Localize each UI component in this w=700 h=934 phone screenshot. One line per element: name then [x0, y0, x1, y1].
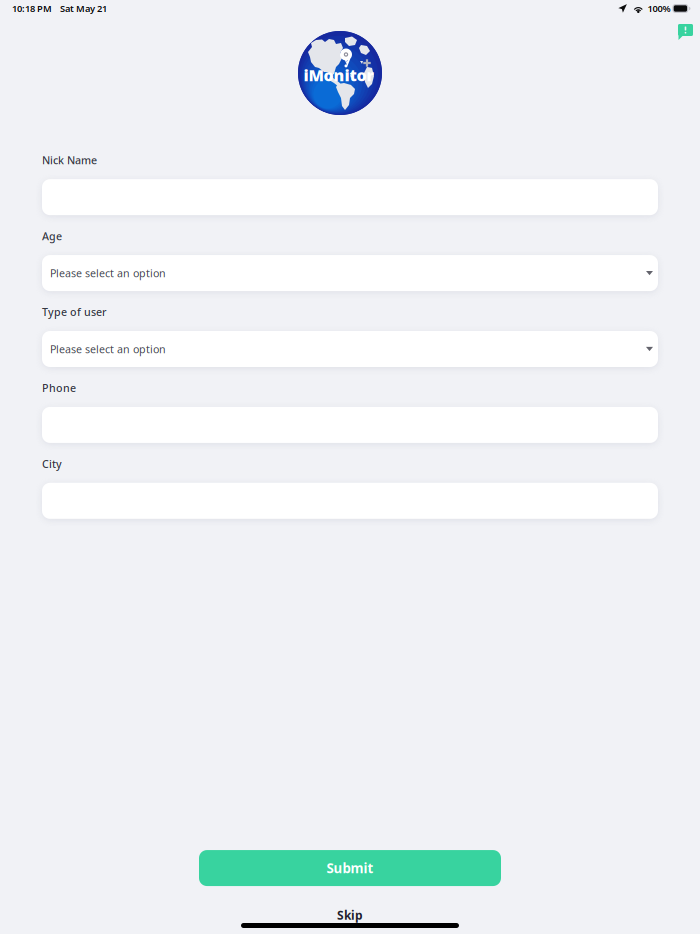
staticText: 10:18 PM: [12, 2, 52, 15]
button[interactable]: Help: [678, 24, 693, 41]
staticText: Nick Name: [42, 153, 97, 167]
staticText: Please select an option: [50, 266, 166, 280]
staticText: Phone: [42, 381, 76, 395]
staticText: Submit: [326, 859, 373, 877]
staticText: 100%: [647, 2, 670, 15]
staticText: City: [42, 457, 62, 471]
staticText: Age: [42, 229, 62, 243]
staticText: iMonitor: [303, 64, 374, 86]
staticText: Please select an option: [50, 342, 166, 356]
button[interactable]: Age: [42, 255, 658, 291]
button[interactable]: Skip: [337, 907, 363, 923]
staticText: Sat May 21: [60, 2, 107, 15]
button[interactable]: Type of user: [42, 331, 658, 367]
staticText: Skip: [337, 907, 363, 923]
button[interactable]: Submit: [199, 850, 501, 886]
staticText: Type of user: [42, 305, 107, 319]
